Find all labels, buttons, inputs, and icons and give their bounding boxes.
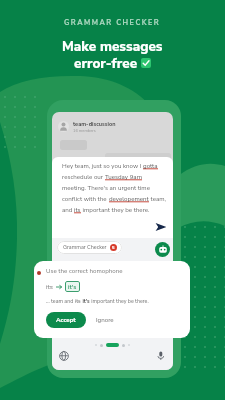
staticText: gotta [143, 162, 158, 170]
staticText: GRAMMAR CHECKER [64, 18, 161, 28]
staticText: it's [81, 298, 90, 305]
staticText: 5 [112, 245, 115, 251]
button[interactable]: Send [153, 219, 169, 235]
button[interactable]: Grammarly assistant [155, 242, 170, 257]
button[interactable]: Change language [57, 349, 70, 362]
staticText: important they be there. [90, 298, 149, 305]
staticText: its [46, 282, 53, 291]
staticText: it's [68, 282, 77, 291]
staticText: Hey team, just so you know I [62, 162, 143, 170]
staticText: important they be there. [81, 206, 150, 214]
button[interactable]: Voice input [154, 349, 167, 362]
staticText: Make messages [62, 37, 163, 55]
staticText: error-free [74, 54, 138, 72]
staticText: developement [109, 195, 149, 203]
staticText: Tuesday 9am [105, 173, 142, 181]
button[interactable]: Accept [46, 312, 86, 328]
staticText: ... team and [46, 298, 75, 305]
button[interactable]: Ignore [92, 313, 118, 327]
staticText: its [74, 206, 81, 214]
button[interactable]: Grammar Checker [57, 241, 122, 254]
staticText: Use the correct homophone [46, 267, 123, 275]
staticText: team, [149, 195, 167, 203]
staticText: Grammar Checker [63, 244, 107, 251]
staticText: team-discussion [73, 120, 116, 128]
staticText: Accept [56, 316, 76, 324]
staticText: 16 members [73, 128, 96, 133]
staticText: and [62, 206, 74, 214]
staticText: its [75, 298, 81, 305]
staticText: reschedule our [62, 173, 105, 181]
staticText: meeting. There's an urgent time [62, 184, 150, 192]
staticText: Ignore [96, 316, 114, 324]
staticText: conflict with the [62, 195, 109, 203]
